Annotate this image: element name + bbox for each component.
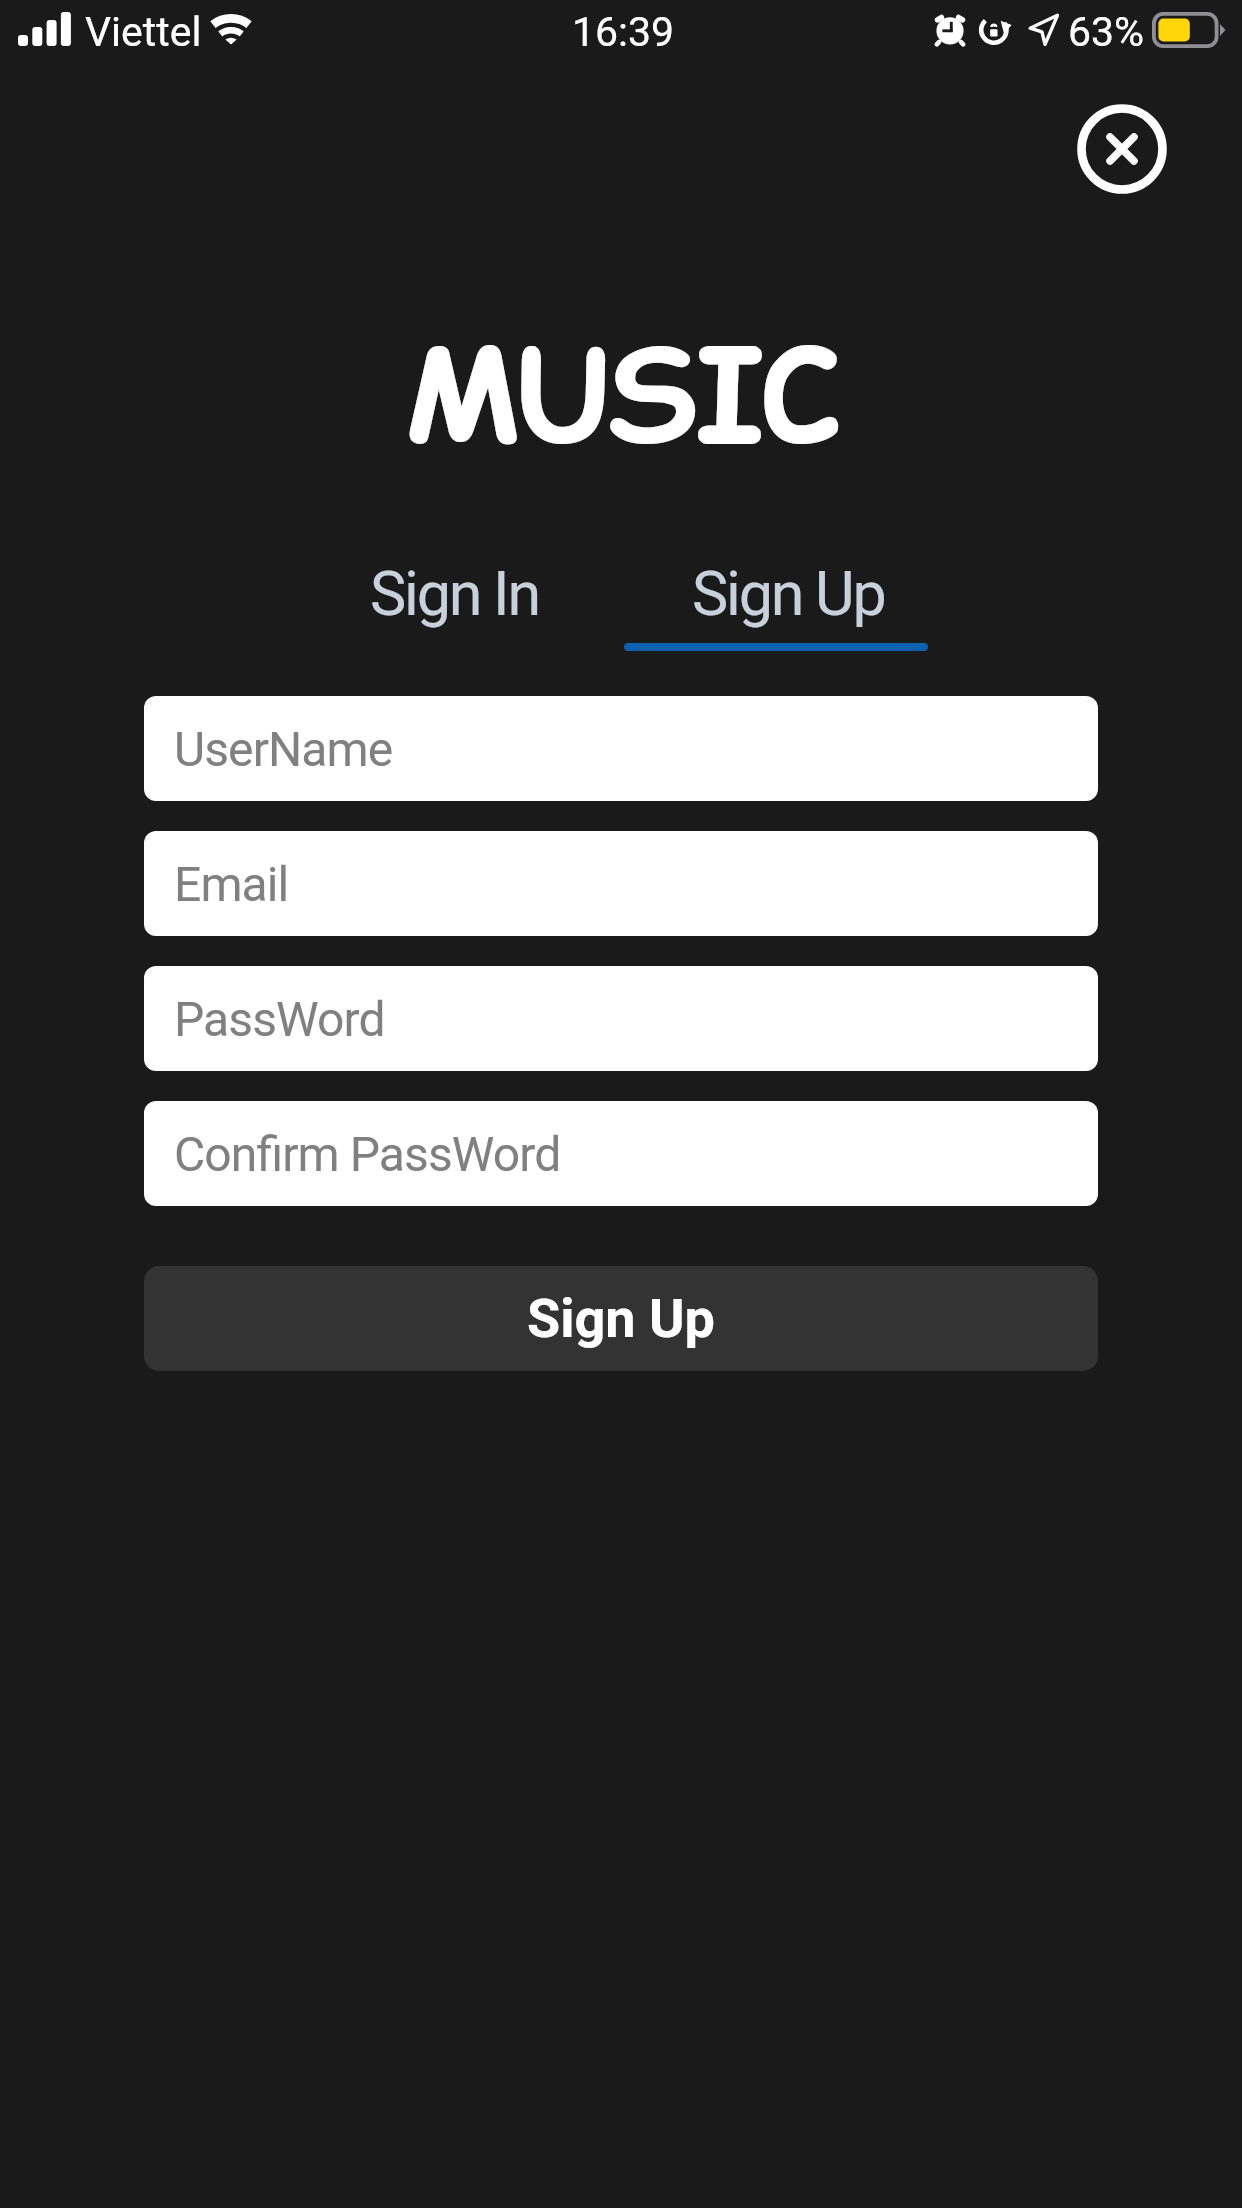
staticText: UserName	[174, 721, 393, 777]
staticText: Confirm PassWord	[174, 1126, 561, 1182]
staticText: MUSIC	[405, 305, 838, 485]
staticText: Sign Up	[692, 558, 885, 629]
staticText: PassWord	[174, 991, 385, 1047]
staticText: Viettel	[85, 8, 202, 56]
staticText: Sign In	[370, 558, 539, 629]
button[interactable]: Sign Up	[144, 1266, 1098, 1371]
button[interactable]: Sign In	[301, 558, 607, 654]
button[interactable]: Sign Up	[635, 558, 941, 654]
staticText: 16:39	[572, 8, 675, 56]
button[interactable]: Email	[144, 831, 1098, 936]
button[interactable]: UserName	[144, 696, 1098, 801]
staticText: Sign Up	[527, 1287, 715, 1350]
button[interactable]: Confirm PassWord	[144, 1101, 1098, 1206]
button[interactable]: Close	[1070, 97, 1174, 201]
button[interactable]: PassWord	[144, 966, 1098, 1071]
staticText: 63%	[1068, 8, 1145, 56]
staticText: Email	[174, 856, 289, 912]
